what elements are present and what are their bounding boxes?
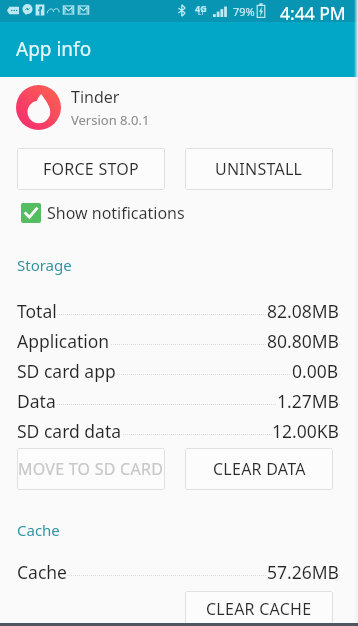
button[interactable]: FORCE STOP [17,148,165,190]
button[interactable]: MOVE TO SD CARD [17,448,165,490]
staticText: 79% [233,4,255,19]
staticText: CLEAR DATA [213,458,306,480]
staticText: MOVE TO SD CARD [18,458,164,480]
staticText: Cache [17,520,60,540]
staticText: FORCE STOP [43,158,139,180]
staticText: SD card app [17,359,116,383]
staticText: 80.80MB [267,329,339,353]
staticText: 12.00KB [272,419,339,443]
staticText: 4:44 PM [280,1,346,23]
staticText: 57.26MB [267,560,339,584]
button[interactable]: CLEAR DATA [185,448,333,490]
staticText: Data [17,389,56,413]
button[interactable]: Show notifications [0,202,358,224]
staticText: UNINSTALL [215,158,303,180]
staticText: CLEAR CACHE [206,598,312,620]
staticText: 0.00B [292,359,339,383]
button[interactable]: CLEAR CACHE [185,591,333,626]
staticText: Total [17,299,57,323]
staticText: Tinder [71,86,120,108]
staticText: Cache [17,560,67,584]
staticText: SD card data [17,419,122,443]
staticText: App info [16,36,92,62]
button[interactable]: UNINSTALL [185,148,333,190]
staticText: Storage [17,255,72,275]
staticText: Application [17,329,110,353]
staticText: 1.27MB [277,389,339,413]
staticText: LT [198,9,205,17]
staticText: 82.08MB [267,299,339,323]
staticText: Show notifications [47,202,185,224]
staticText: 4G [195,2,207,14]
staticText: Version 8.0.1 [71,111,150,129]
